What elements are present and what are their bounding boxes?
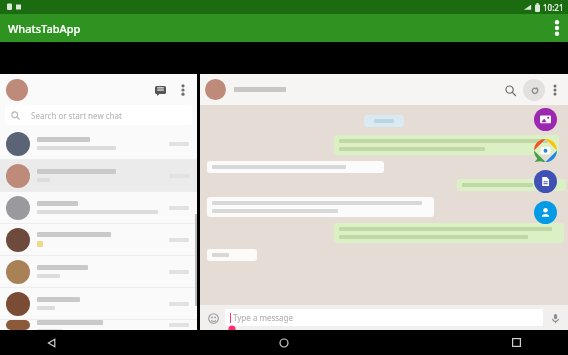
button[interactable] <box>0 224 197 255</box>
button[interactable]: Type a message <box>225 309 543 326</box>
button[interactable] <box>212 253 252 257</box>
staticText: Type a message <box>233 312 294 323</box>
button[interactable] <box>212 165 379 169</box>
button[interactable]: Home <box>254 330 314 355</box>
staticText: 10:21 <box>543 2 564 13</box>
button[interactable] <box>339 139 554 151</box>
button[interactable]: Profile <box>6 79 28 101</box>
button[interactable] <box>0 160 197 191</box>
button[interactable] <box>0 128 197 159</box>
button[interactable] <box>0 320 197 330</box>
button[interactable] <box>0 288 197 319</box>
button[interactable]: Search <box>499 79 521 101</box>
button[interactable]: Attach <box>523 79 545 101</box>
button[interactable]: More options <box>546 81 564 99</box>
staticText: Search or start new chat <box>31 110 122 121</box>
button[interactable]: New chat <box>147 77 173 103</box>
button[interactable] <box>339 227 559 239</box>
button[interactable] <box>0 192 197 223</box>
button[interactable]: More options <box>546 14 568 42</box>
button[interactable]: Voice message <box>546 309 564 327</box>
button[interactable]: Recent apps <box>486 330 546 355</box>
staticText: WhatsTabApp <box>8 21 81 36</box>
button[interactable]: Camera <box>534 139 557 162</box>
button[interactable] <box>462 183 561 187</box>
button[interactable]: Document <box>534 170 557 193</box>
button[interactable]: More options <box>173 80 193 100</box>
button[interactable]: Emoji <box>204 309 222 327</box>
button[interactable]: Search or start new chat <box>5 105 192 125</box>
button[interactable] <box>212 201 429 213</box>
button[interactable]: Back <box>22 330 82 355</box>
button[interactable]: Gallery <box>534 108 557 131</box>
button[interactable]: Contact <box>534 201 557 224</box>
button[interactable] <box>0 256 197 287</box>
